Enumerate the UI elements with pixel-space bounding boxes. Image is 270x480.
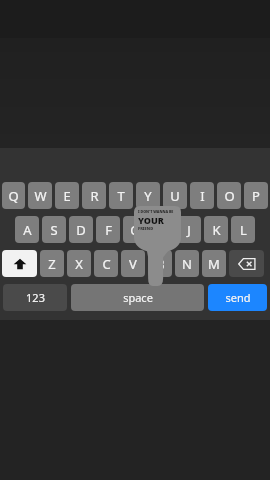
button[interactable]: S: [42, 216, 66, 243]
staticText: O: [224, 187, 235, 205]
button[interactable]: M: [202, 250, 226, 277]
button[interactable]: U: [163, 182, 187, 209]
button[interactable]: F: [96, 216, 120, 243]
button[interactable]: Z: [40, 250, 64, 277]
staticText: Y: [144, 187, 152, 205]
staticText: S: [50, 221, 58, 239]
button[interactable]: N: [175, 250, 199, 277]
button[interactable]: Shift: [2, 250, 37, 277]
staticText: P: [252, 187, 260, 205]
button[interactable]: Y: [136, 182, 160, 209]
staticText: V: [129, 255, 137, 273]
button[interactable]: space: [71, 284, 204, 311]
staticText: B: [156, 255, 165, 273]
staticText: H: [157, 221, 167, 239]
staticText: J: [187, 221, 191, 239]
button[interactable]: A: [15, 216, 39, 243]
button[interactable]: Q: [2, 182, 25, 209]
staticText: 123: [26, 290, 45, 305]
staticText: C: [102, 255, 111, 273]
staticText: send: [225, 290, 251, 305]
button[interactable]: J: [177, 216, 201, 243]
staticText: L: [240, 221, 247, 239]
button[interactable]: D: [69, 216, 93, 243]
staticText: T: [117, 187, 125, 205]
staticText: FRIEND: [138, 226, 154, 231]
staticText: I: [200, 187, 205, 205]
staticText: X: [75, 255, 83, 273]
button[interactable]: K: [204, 216, 228, 243]
staticText: YOUR: [138, 214, 164, 226]
button[interactable]: L: [231, 216, 255, 243]
staticText: K: [212, 221, 221, 239]
staticText: Z: [48, 255, 56, 273]
button[interactable]: T: [109, 182, 133, 209]
button[interactable]: X: [67, 250, 91, 277]
staticText: M: [208, 255, 220, 273]
button[interactable]: W: [28, 182, 52, 209]
staticText: A: [23, 221, 32, 239]
button[interactable]: O: [217, 182, 241, 209]
staticText: G: [130, 221, 140, 239]
staticText: W: [34, 187, 47, 205]
staticText: D: [76, 221, 86, 239]
staticText: N: [182, 255, 192, 273]
button[interactable]: P: [244, 182, 268, 209]
button[interactable]: G: [123, 216, 147, 243]
staticText: I DON'T WANNA BE: [138, 209, 174, 214]
staticText: space: [123, 290, 153, 305]
button[interactable]: C: [94, 250, 118, 277]
button[interactable]: V: [121, 250, 145, 277]
button[interactable]: H: [150, 216, 174, 243]
button[interactable]: I: [190, 182, 214, 209]
button[interactable]: R: [82, 182, 106, 209]
staticText: F: [105, 221, 112, 239]
staticText: E: [63, 187, 71, 205]
button[interactable]: Backspace: [229, 250, 264, 277]
staticText: R: [90, 187, 99, 205]
staticText: U: [170, 187, 180, 205]
staticText: Q: [8, 187, 19, 205]
button[interactable]: E: [55, 182, 79, 209]
button[interactable]: B: [148, 250, 172, 277]
button[interactable]: 123: [3, 284, 67, 311]
button[interactable]: send: [208, 284, 267, 311]
